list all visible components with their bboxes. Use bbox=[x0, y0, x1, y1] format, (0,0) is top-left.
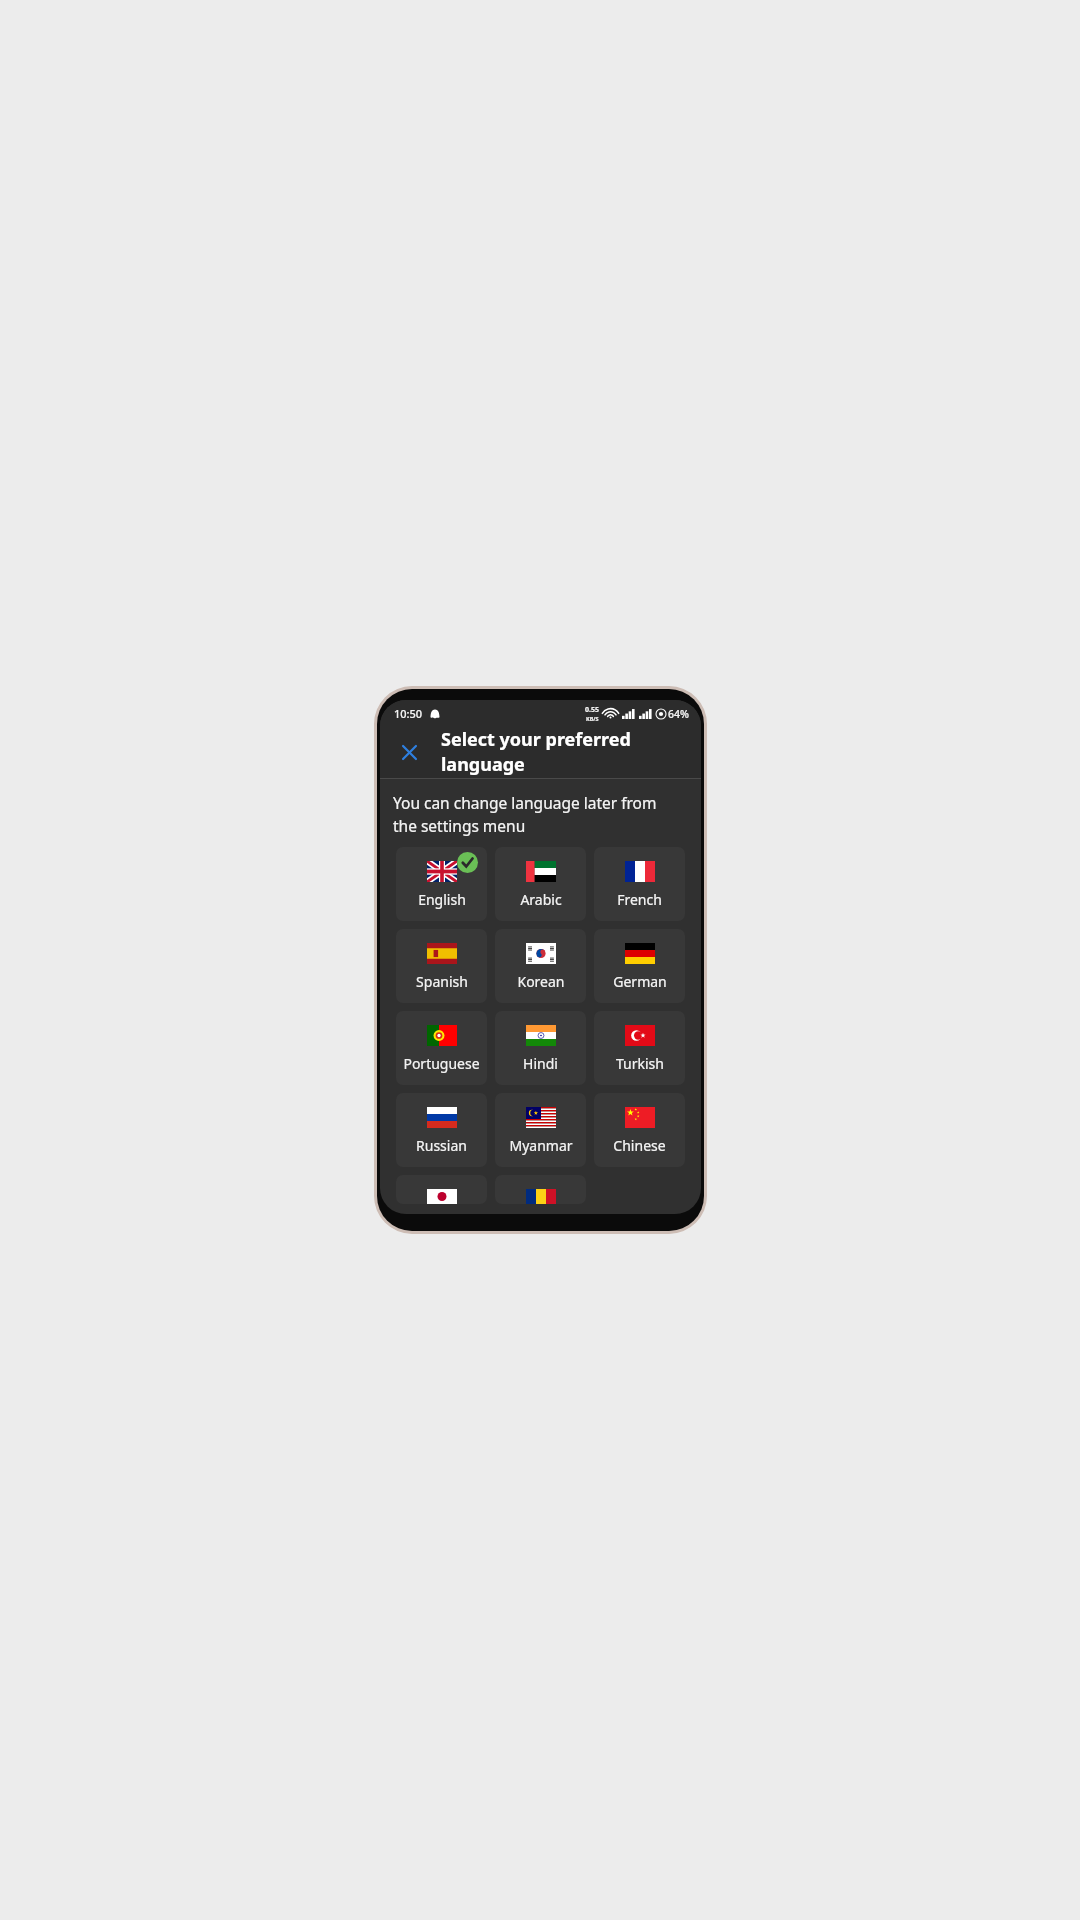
button[interactable]: Chinese bbox=[594, 1093, 685, 1167]
staticText: Korean bbox=[517, 972, 565, 991]
staticText: Portuguese bbox=[403, 1054, 480, 1073]
button[interactable]: Japanese bbox=[396, 1175, 487, 1204]
staticText: Myanmar bbox=[509, 1136, 573, 1155]
button[interactable]: English bbox=[396, 847, 487, 921]
button[interactable]: Romanian bbox=[495, 1175, 586, 1204]
staticText: English bbox=[418, 890, 466, 909]
button[interactable]: Russian bbox=[396, 1093, 487, 1167]
staticText: KB/S bbox=[586, 715, 599, 722]
staticText: Russian bbox=[416, 1136, 467, 1155]
button[interactable]: Arabic bbox=[495, 847, 586, 921]
button[interactable]: Spanish bbox=[396, 929, 487, 1003]
button[interactable]: Hindi bbox=[495, 1011, 586, 1085]
button[interactable]: Portuguese bbox=[396, 1011, 487, 1085]
staticText: Arabic bbox=[520, 890, 562, 909]
staticText: Hindi bbox=[523, 1054, 558, 1073]
button[interactable]: Myanmar bbox=[495, 1093, 586, 1167]
staticText: German bbox=[613, 972, 667, 991]
staticText: Spanish bbox=[416, 972, 468, 991]
staticText: 0.55 bbox=[585, 705, 599, 715]
button[interactable]: Turkish bbox=[594, 1011, 685, 1085]
staticText: You can change language later from the s… bbox=[393, 792, 683, 837]
button[interactable]: Korean bbox=[495, 929, 586, 1003]
staticText: 10:50 bbox=[394, 706, 423, 721]
staticText: Select your preferred language bbox=[441, 727, 701, 777]
staticText: 64% bbox=[668, 707, 689, 721]
staticText: French bbox=[617, 890, 662, 909]
button[interactable]: French bbox=[594, 847, 685, 921]
button[interactable]: Close bbox=[389, 732, 429, 772]
staticText: Chinese bbox=[613, 1136, 666, 1155]
staticText: Turkish bbox=[616, 1054, 664, 1073]
button[interactable]: German bbox=[594, 929, 685, 1003]
